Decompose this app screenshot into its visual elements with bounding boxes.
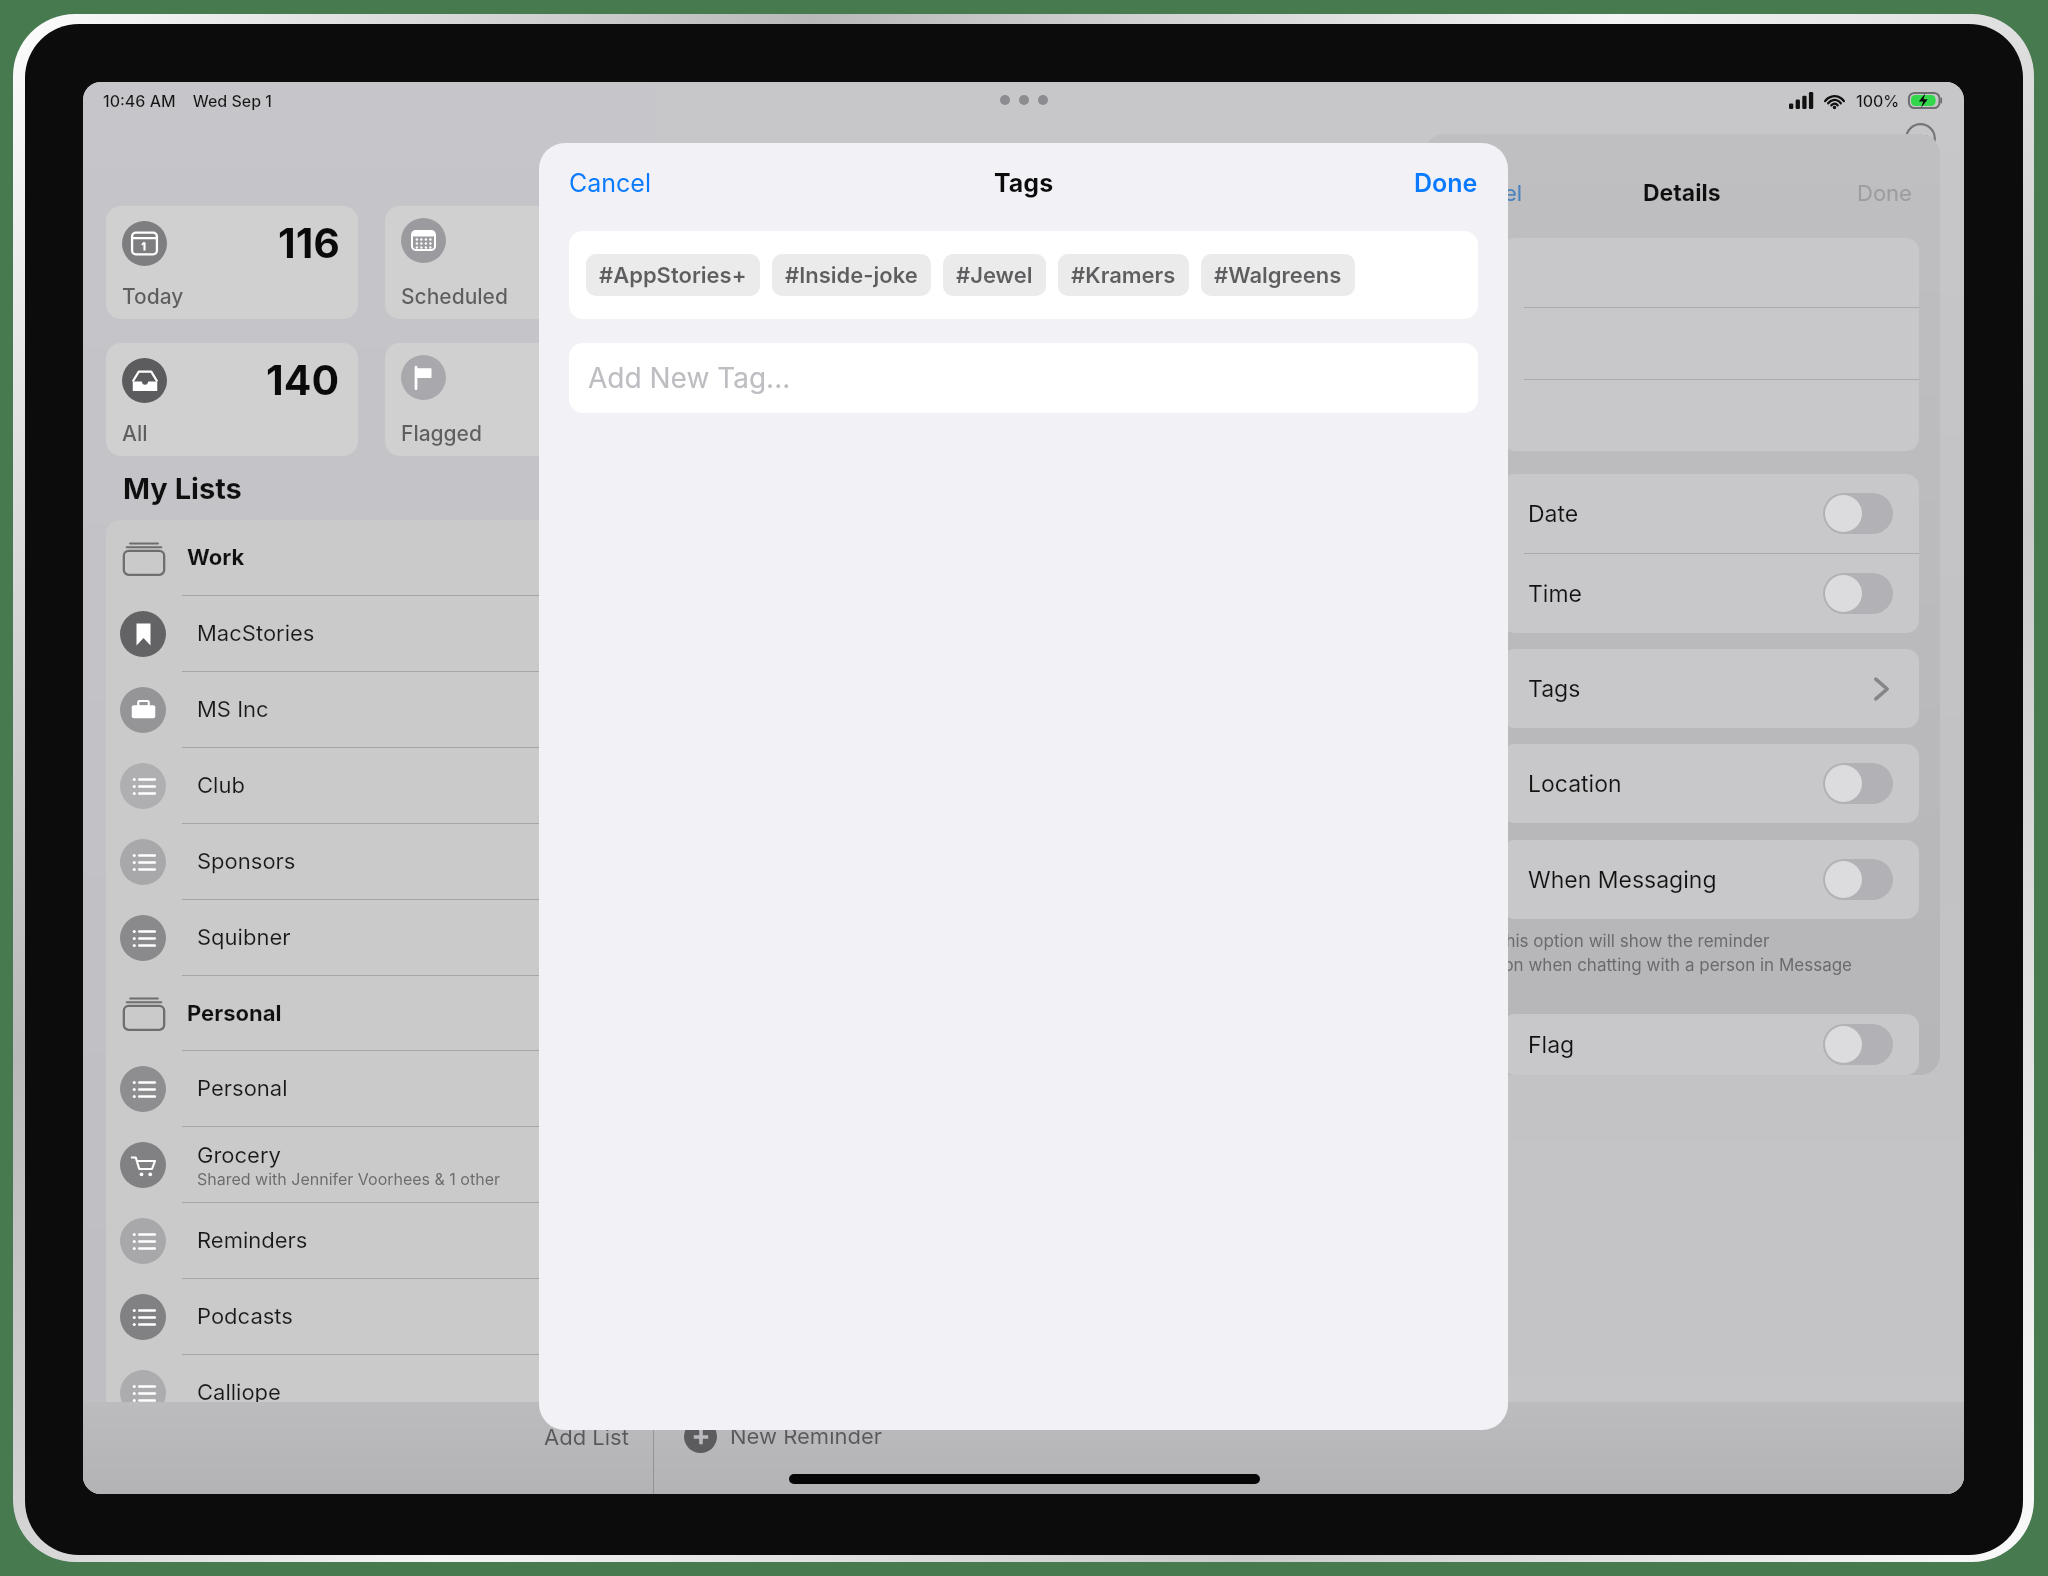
button[interactable]: Cancel	[539, 160, 675, 206]
staticText: Work	[187, 544, 245, 571]
button[interactable]: Podcasts	[106, 1279, 655, 1354]
button[interactable]: MS Inc	[106, 672, 655, 747]
button[interactable]: When Messaging	[1502, 840, 1919, 919]
staticText: Done	[1414, 168, 1478, 198]
button[interactable]: MacStories	[106, 596, 655, 671]
button[interactable]: More options	[1905, 123, 1936, 154]
button[interactable]: #Kramers	[1058, 254, 1189, 296]
button[interactable]: Personal	[106, 976, 655, 1050]
staticText: Reminders	[197, 1227, 308, 1254]
button[interactable]: Work	[106, 520, 655, 595]
staticText: Done	[1857, 180, 1912, 207]
staticText: Date	[1528, 500, 1579, 528]
button[interactable]: Date	[1502, 474, 1919, 553]
staticText: All	[122, 421, 148, 446]
staticText: Today	[122, 284, 184, 309]
staticText: #AppStories+	[599, 262, 747, 289]
staticText: Flagged	[401, 421, 482, 446]
button[interactable]: Scheduled	[385, 206, 638, 319]
staticText: #Walgreens	[1214, 262, 1342, 289]
staticText: #Inside-joke	[785, 262, 918, 289]
button[interactable]: Flag	[1502, 1014, 1919, 1075]
button[interactable]: Location	[1502, 744, 1919, 823]
staticText: Club	[197, 772, 245, 799]
button[interactable]: Time	[1502, 554, 1919, 633]
staticText: Tags	[994, 168, 1054, 198]
staticText: Grocery	[197, 1142, 281, 1169]
staticText: 10:46 AM Wed Sep 1	[103, 91, 272, 110]
staticText: Location	[1528, 770, 1622, 798]
button[interactable]: Sponsors	[106, 824, 655, 899]
staticText: Turning this option will show the remind…	[1434, 931, 1851, 975]
staticText: MacStories	[197, 620, 315, 647]
staticText: #Jewel	[956, 262, 1033, 289]
staticText: 140	[266, 355, 340, 405]
button[interactable]: Reminders	[106, 1203, 655, 1278]
staticText: Personal	[187, 1000, 282, 1027]
button[interactable]: Multitasking options	[990, 87, 1058, 113]
staticText: Calliope	[197, 1379, 281, 1406]
staticText: New Reminder	[730, 1423, 883, 1450]
staticText: Squibner	[197, 924, 291, 951]
button[interactable]: Done	[1390, 160, 1508, 206]
button[interactable]: #Inside-joke	[772, 254, 931, 296]
staticText: Cancel	[569, 168, 651, 198]
button[interactable]: 116	[106, 206, 358, 319]
staticText: Podcasts	[197, 1303, 293, 1330]
staticText: Add New Tag...	[588, 361, 791, 395]
staticText: 116	[278, 218, 340, 268]
button[interactable]: #Jewel	[943, 254, 1046, 296]
button[interactable]: Grocery	[106, 1127, 655, 1202]
button[interactable]: 140	[106, 343, 358, 456]
button[interactable]: Squibner	[106, 900, 655, 975]
button[interactable]: New Reminder	[678, 1416, 889, 1457]
button[interactable]: #Walgreens	[1201, 254, 1355, 296]
staticText: Tags	[1528, 675, 1581, 703]
staticText: Sponsors	[197, 848, 296, 875]
button[interactable]: Add List	[538, 1420, 635, 1455]
button[interactable]: #AppStories+	[586, 254, 760, 296]
staticText: Details	[1643, 179, 1721, 207]
staticText: 100%	[1856, 91, 1900, 110]
button[interactable]: Add New Tag...	[569, 343, 1478, 413]
staticText: MS Inc	[197, 696, 269, 723]
button[interactable]: Club	[106, 748, 655, 823]
staticText: Scheduled	[401, 284, 508, 309]
staticText: Personal	[197, 1075, 288, 1102]
button[interactable]: Flagged	[385, 343, 638, 456]
staticText: #Kramers	[1071, 262, 1176, 289]
button[interactable]: Personal	[106, 1051, 655, 1126]
staticText: My Lists	[123, 471, 242, 506]
button[interactable]: Calliope	[106, 1355, 655, 1430]
staticText: When Messaging	[1528, 866, 1717, 894]
staticText: Time	[1528, 580, 1582, 608]
staticText: Cancel	[1450, 180, 1523, 207]
button[interactable]: Tags	[1502, 649, 1919, 728]
staticText: Add List	[544, 1424, 629, 1451]
staticText: Flag	[1528, 1031, 1575, 1059]
staticText: Shared with Jennifer Voorhees & 1 other	[197, 1169, 501, 1188]
